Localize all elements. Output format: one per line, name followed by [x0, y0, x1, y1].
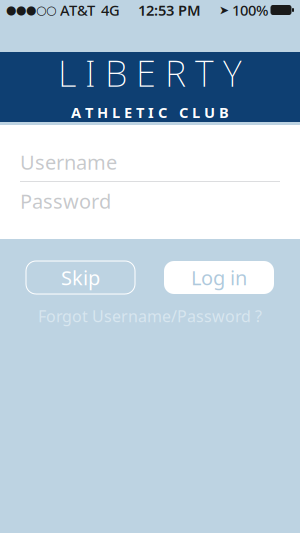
- staticText: Forgot Username/Password ?: [38, 305, 262, 327]
- staticText: 100%: [232, 0, 268, 20]
- staticText: ●●●○○: [6, 3, 56, 17]
- button[interactable]: Username: [0, 143, 300, 181]
- staticText: L I B E R T Y: [58, 49, 242, 97]
- staticText: Skip: [61, 264, 100, 291]
- staticText: ➤: [219, 3, 229, 17]
- button[interactable]: Forgot Username/Password ?: [0, 306, 300, 326]
- staticText: AT&T: [60, 0, 95, 20]
- staticText: Username: [20, 149, 117, 175]
- staticText: Log in: [191, 264, 247, 291]
- button[interactable]: Skip: [26, 261, 135, 294]
- staticText: 12:53 PM: [138, 0, 201, 20]
- staticText: Password: [20, 188, 111, 214]
- staticText: A T H L E T I C C L U B: [71, 103, 229, 122]
- button[interactable]: Password: [0, 182, 300, 220]
- staticText: 4G: [101, 0, 120, 20]
- button[interactable]: Log in: [164, 261, 274, 294]
